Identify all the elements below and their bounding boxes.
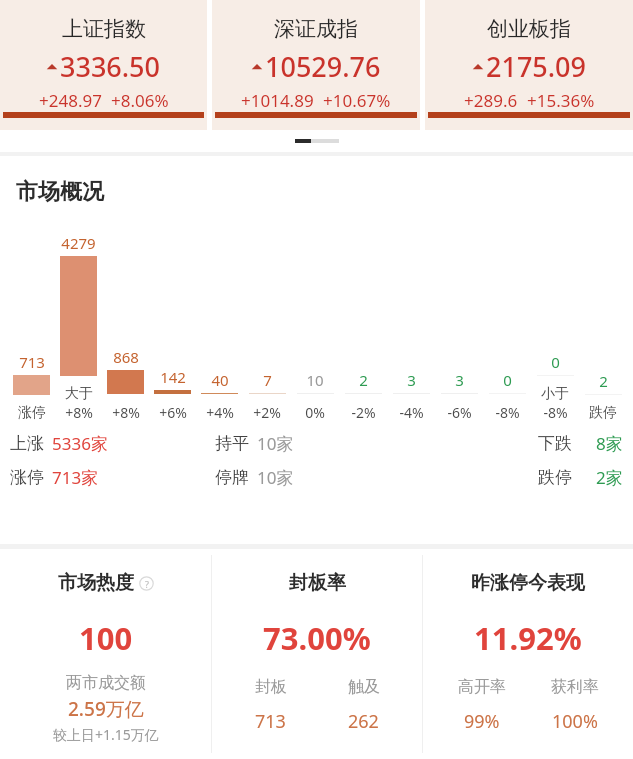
button[interactable]: 上证指数: [0, 0, 207, 130]
staticText: +8%: [65, 403, 93, 422]
button[interactable]: 帮助: [139, 576, 154, 591]
staticText: 触及: [348, 677, 380, 697]
staticText: 上涨: [10, 433, 44, 454]
staticText: 2.59万亿: [68, 696, 144, 722]
staticText: +15.36%: [527, 89, 595, 112]
staticText: +4%: [206, 403, 234, 422]
staticText: 8家: [596, 432, 623, 455]
staticText: 昨涨停今表现: [471, 571, 585, 595]
staticText: 大于: [65, 385, 93, 403]
staticText: 持平: [215, 433, 249, 454]
staticText: 10529.76: [265, 48, 381, 85]
staticText: 上证指数: [62, 16, 146, 42]
staticText: 0: [503, 370, 512, 390]
staticText: 11.92%: [474, 617, 582, 659]
button[interactable]: 深证成指: [212, 0, 420, 130]
staticText: 市场热度: [58, 571, 134, 595]
staticText: 4279: [61, 233, 96, 253]
staticText: +289.6: [464, 89, 518, 112]
staticText: +1014.89: [241, 89, 314, 112]
staticText: 跌停: [589, 404, 617, 422]
staticText: 868: [113, 347, 139, 367]
staticText: -8%: [543, 403, 568, 422]
staticText: 10家: [257, 466, 294, 489]
staticText: 2: [359, 370, 368, 390]
staticText: -6%: [447, 403, 472, 422]
staticText: 713家: [52, 466, 99, 489]
staticText: 创业板指: [487, 16, 571, 42]
staticText: +2%: [253, 403, 281, 422]
staticText: 封板: [255, 677, 287, 697]
staticText: +8%: [112, 403, 140, 422]
button[interactable]: 市场热度: [0, 549, 211, 759]
staticText: 713: [255, 709, 286, 734]
staticText: 两市成交额: [66, 673, 146, 693]
staticText: 涨停: [10, 467, 44, 488]
staticText: 高开率: [458, 677, 506, 697]
staticText: 0%: [305, 403, 325, 422]
staticText: 713: [19, 352, 45, 372]
button[interactable]: 昨涨停今表现: [423, 549, 633, 759]
staticText: 深证成指: [274, 16, 358, 42]
button[interactable]: 创业板指: [425, 0, 633, 130]
staticText: 73.00%: [263, 617, 371, 659]
staticText: 较上日+1.15万亿: [53, 725, 159, 744]
staticText: 5336家: [52, 432, 108, 455]
staticText: 262: [348, 709, 379, 734]
staticText: 10家: [257, 432, 294, 455]
staticText: 封板率: [289, 571, 346, 595]
staticText: 2家: [596, 466, 623, 489]
staticText: 涨停: [18, 404, 46, 422]
staticText: 7: [263, 370, 272, 390]
staticText: 10: [306, 370, 324, 390]
staticText: 跌停: [538, 467, 572, 488]
staticText: 0: [551, 352, 560, 372]
staticText: -2%: [351, 403, 376, 422]
staticText: +248.97: [39, 89, 102, 112]
staticText: 3336.50: [60, 48, 161, 85]
staticText: 100: [79, 617, 133, 659]
staticText: 下跌: [538, 433, 572, 454]
staticText: -8%: [495, 403, 520, 422]
staticText: +6%: [159, 403, 187, 422]
staticText: 2: [599, 371, 608, 391]
staticText: 100%: [552, 709, 598, 734]
staticText: 40: [211, 370, 229, 390]
staticText: 小于: [541, 385, 569, 403]
staticText: 市场概况: [16, 178, 104, 206]
staticText: +10.67%: [323, 89, 391, 112]
staticText: +8.06%: [111, 89, 169, 112]
staticText: 3: [407, 370, 416, 390]
staticText: -4%: [399, 403, 424, 422]
staticText: 142: [160, 367, 186, 387]
staticText: ?: [145, 578, 149, 590]
staticText: 停牌: [215, 467, 249, 488]
staticText: 3: [455, 370, 464, 390]
button[interactable]: 封板率: [212, 549, 422, 759]
staticText: 获利率: [551, 677, 599, 697]
staticText: 2175.09: [486, 48, 587, 85]
staticText: 99%: [464, 709, 500, 734]
